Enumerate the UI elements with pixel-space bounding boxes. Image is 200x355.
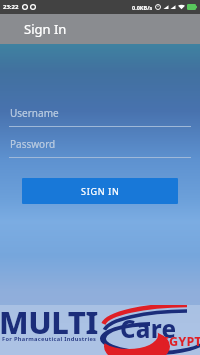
- staticText: EGYPT: [162, 333, 200, 350]
- staticText: 0.0KB/s: [132, 4, 153, 11]
- staticText: Password: [10, 137, 56, 151]
- staticText: Username: [10, 106, 59, 120]
- staticText: Care: [120, 312, 177, 345]
- staticText: For Pharmaceutical Industries: [2, 335, 97, 343]
- button[interactable]: SIGN IN: [22, 178, 178, 204]
- staticText: SIGN IN: [81, 185, 120, 197]
- staticText: Sign In: [24, 20, 67, 38]
- staticText: MULTI: [0, 301, 98, 343]
- staticText: 23:22: [3, 3, 19, 11]
